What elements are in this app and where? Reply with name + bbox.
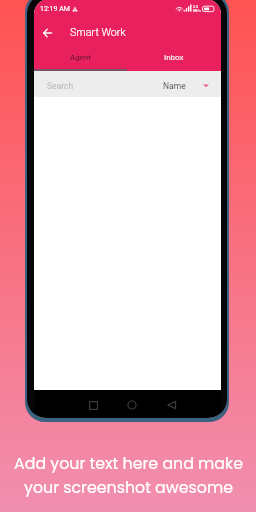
staticText: Search [47, 81, 74, 91]
button[interactable]: Back [36, 22, 58, 44]
button[interactable]: Recents [81, 393, 105, 417]
staticText: Smart Work [70, 26, 126, 39]
button[interactable]: Home [120, 393, 144, 417]
staticText: Add your text here and make [14, 452, 243, 474]
staticText: Name [163, 81, 186, 91]
button[interactable]: Back [160, 393, 184, 417]
button[interactable]: Agent [34, 46, 127, 69]
button[interactable]: Name [163, 81, 209, 91]
staticText: your screenshot awesome [24, 476, 233, 498]
staticText: Agent [70, 53, 91, 62]
staticText: 12:19 AM [40, 5, 70, 13]
staticText: KB/s [193, 9, 201, 13]
staticText: 3.8 [193, 5, 198, 9]
staticText: Inbox [164, 53, 184, 62]
button[interactable]: Inbox [127, 46, 221, 69]
